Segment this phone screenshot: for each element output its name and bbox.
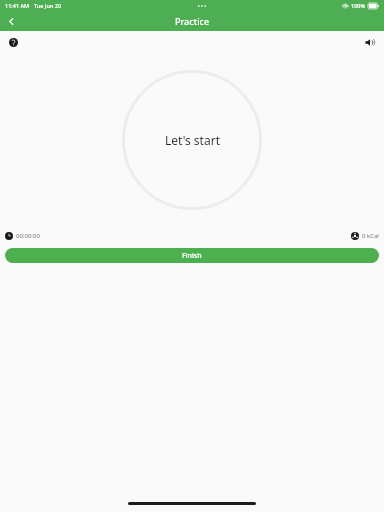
- staticText: Finish: [182, 251, 202, 261]
- button[interactable]: Help: [5, 34, 21, 50]
- staticText: 00:00:00: [16, 232, 40, 240]
- staticText: 100%: [351, 2, 366, 9]
- staticText: Let's start: [165, 132, 220, 148]
- button[interactable]: Finish: [5, 248, 379, 263]
- staticText: 11:41 AM: [5, 2, 30, 9]
- staticText: Tue Jun 20: [34, 2, 62, 9]
- staticText: 0 kCal: [362, 232, 379, 240]
- button[interactable]: Sound: [361, 33, 379, 51]
- staticText: Practice: [175, 15, 210, 27]
- button[interactable]: Let's start: [122, 70, 262, 210]
- button[interactable]: Back: [0, 11, 22, 31]
